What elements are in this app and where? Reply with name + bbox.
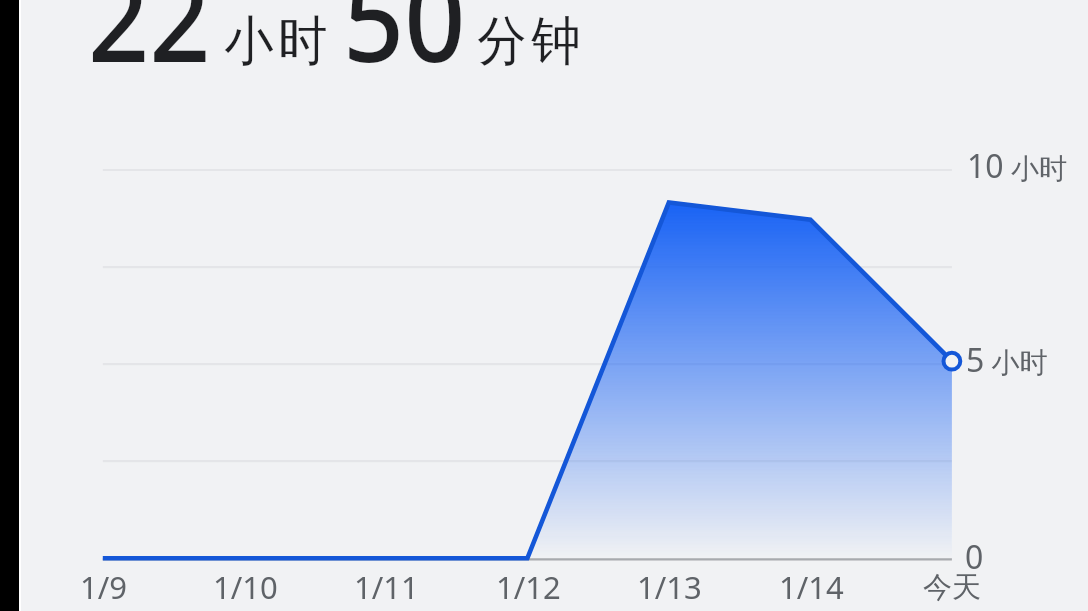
button[interactable]: 今天 (881, 170, 1023, 611)
staticText: 1/14 (779, 566, 844, 608)
staticText: 1/9 (80, 566, 127, 608)
staticText: 1/11 (354, 566, 419, 608)
staticText: 1/12 (496, 566, 561, 608)
button[interactable]: 1/13 (598, 170, 740, 611)
button[interactable]: 1/9 (32, 170, 174, 611)
staticText: 0 (965, 535, 984, 579)
staticText: 分钟 (475, 8, 583, 75)
staticText: 今天 (923, 569, 981, 606)
staticText: 5 小时 (966, 338, 1048, 382)
staticText: 50 (343, 0, 465, 97)
staticText: 22 (88, 0, 210, 97)
button[interactable]: 1/11 (315, 170, 457, 611)
button[interactable]: 1/14 (740, 170, 882, 611)
staticText: 1/10 (213, 566, 278, 608)
button[interactable]: 1/12 (457, 170, 599, 611)
button[interactable]: 1/10 (174, 170, 316, 611)
staticText: 小时 (222, 8, 330, 75)
staticText: 1/13 (637, 566, 702, 608)
staticText: 10 小时 (967, 144, 1067, 188)
